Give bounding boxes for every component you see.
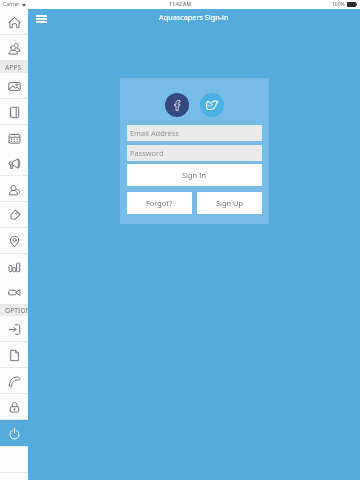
staticText: Email Address <box>130 128 179 138</box>
button[interactable]: Sign in <box>0 316 28 342</box>
button[interactable]: Email Address <box>127 125 262 141</box>
button[interactable]: Sign in with Twitter <box>200 93 224 117</box>
staticText: APPS <box>5 63 22 72</box>
button[interactable]: Gallery <box>0 73 28 99</box>
button[interactable]: Announcements <box>0 150 28 176</box>
staticText: Sign Up <box>216 198 243 208</box>
button[interactable]: Profile <box>0 176 28 202</box>
button[interactable]: Call <box>0 368 28 394</box>
staticText: Sign In <box>182 170 207 180</box>
button[interactable]: Calendar <box>0 125 28 151</box>
staticText: Carrier <box>3 1 20 8</box>
staticText: 11:42 AM <box>169 1 191 8</box>
staticText: Password <box>130 148 164 158</box>
button[interactable]: Sign Up <box>197 192 262 214</box>
button[interactable]: Tags <box>0 202 28 228</box>
button[interactable]: Sign in with Facebook <box>165 93 189 117</box>
button[interactable]: Places <box>0 228 28 254</box>
button[interactable]: Documents <box>0 342 28 368</box>
staticText: Forgot? <box>146 198 173 208</box>
staticText: 100% <box>332 1 345 8</box>
button[interactable]: Menu <box>33 11 49 27</box>
button[interactable]: Privacy <box>0 394 28 420</box>
button[interactable]: Forgot? <box>127 192 192 214</box>
button[interactable]: Sign In <box>127 164 262 186</box>
button[interactable]: Power <box>0 420 28 446</box>
button[interactable]: Contacts <box>0 35 28 61</box>
button[interactable]: Home <box>0 9 28 35</box>
staticText: Aquascapers Sign-in <box>159 12 229 22</box>
staticText: OPTIONS <box>5 306 33 315</box>
button[interactable]: Video <box>0 279 28 305</box>
button[interactable]: Notebook <box>0 99 28 125</box>
button[interactable]: Statistics <box>0 254 28 280</box>
button[interactable]: Password <box>127 145 262 161</box>
